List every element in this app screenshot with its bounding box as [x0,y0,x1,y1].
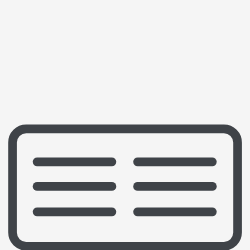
button[interactable]: Article list card [0,0,250,250]
